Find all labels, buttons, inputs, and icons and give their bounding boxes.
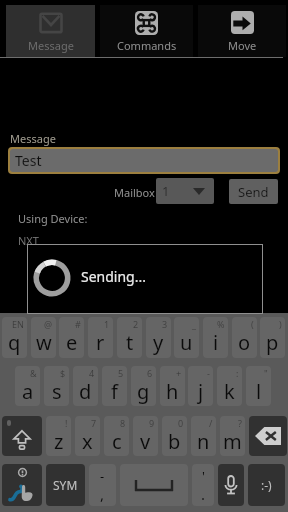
- staticText: c: [112, 428, 122, 455]
- button[interactable]: 8: [104, 416, 129, 456]
- staticText: u: [180, 329, 193, 356]
- staticText: p: [266, 329, 279, 356]
- button[interactable]: 1: [156, 178, 214, 204]
- button[interactable]: 4: [73, 366, 98, 406]
- staticText: l: [256, 378, 262, 405]
- staticText: -: [207, 367, 210, 379]
- button[interactable]: Commands: [100, 5, 193, 57]
- staticText: j: [198, 378, 204, 405]
- button[interactable]: :-): [248, 464, 285, 506]
- staticText: !: [65, 417, 68, 429]
- staticText: ): [279, 318, 282, 330]
- staticText: :: [236, 367, 239, 379]
- button[interactable]: _: [174, 317, 199, 358]
- staticText: 1: [162, 182, 170, 200]
- staticText: ?: [238, 417, 242, 429]
- staticText: g: [137, 378, 150, 405]
- staticText: %: [217, 318, 225, 330]
- button[interactable]: 1: [88, 317, 113, 358]
- staticText: n: [197, 428, 210, 455]
- button[interactable]: 3: [146, 317, 171, 358]
- staticText: m: [223, 428, 242, 455]
- button[interactable]: Message: [6, 5, 95, 57]
- button[interactable]: ': [192, 464, 214, 506]
- button[interactable]: +: [160, 366, 185, 406]
- button[interactable]: -: [188, 366, 213, 406]
- staticText: 0: [178, 417, 184, 429]
- staticText: Commands: [117, 38, 177, 53]
- staticText: d: [79, 378, 92, 405]
- staticText: 8: [120, 417, 126, 429]
- button[interactable]: (: [232, 317, 257, 358]
- button[interactable]: Test: [10, 149, 278, 172]
- button[interactable]: Move: [198, 5, 286, 57]
- staticText: :-): [261, 477, 272, 493]
- button[interactable]: #: [59, 317, 84, 358]
- button[interactable]: Gesture typing: [2, 464, 42, 506]
- staticText: v: [140, 428, 151, 455]
- button[interactable]: 9: [133, 416, 158, 456]
- staticText: ': [202, 467, 205, 485]
- staticText: NXT: [18, 233, 39, 248]
- staticText: f: [111, 378, 118, 405]
- other: Select mailbox: [193, 188, 205, 195]
- staticText: -: [100, 467, 105, 485]
- button[interactable]: SYM: [46, 464, 85, 506]
- button[interactable]: 5: [102, 366, 127, 406]
- button[interactable]: 2: [117, 317, 142, 358]
- staticText: Test: [15, 151, 42, 170]
- button[interactable]: 0: [162, 416, 187, 456]
- staticText: z: [54, 428, 64, 455]
- staticText: Send: [238, 183, 269, 201]
- staticText: 6: [147, 367, 153, 379]
- button[interactable]: ?: [220, 416, 245, 456]
- button[interactable]: EN: [2, 317, 27, 358]
- staticText: s: [52, 378, 62, 405]
- button[interactable]: ": [246, 366, 271, 406]
- button[interactable]: Space: [120, 464, 188, 506]
- button[interactable]: !: [46, 416, 71, 456]
- button[interactable]: $: [44, 366, 69, 406]
- staticText: Mailbox: [114, 185, 155, 200]
- staticText: @: [44, 318, 53, 330]
- other: Shift: [2, 416, 42, 456]
- staticText: Message: [28, 38, 74, 53]
- staticText: _: [192, 318, 196, 330]
- staticText: 9: [149, 417, 155, 429]
- staticText: ": [264, 367, 268, 379]
- button[interactable]: Send: [229, 179, 278, 204]
- staticText: Message: [10, 131, 56, 146]
- staticText: q: [8, 329, 21, 356]
- staticText: &: [30, 367, 37, 379]
- staticText: 7: [91, 417, 97, 429]
- staticText: +: [176, 367, 182, 379]
- staticText: SYM: [53, 477, 78, 493]
- staticText: k: [224, 378, 235, 405]
- staticText: a: [22, 378, 34, 405]
- staticText: Using Device:: [18, 211, 88, 226]
- button[interactable]: -: [89, 464, 116, 506]
- button[interactable]: :: [217, 366, 242, 406]
- button[interactable]: Shift: [2, 416, 42, 456]
- button[interactable]: &: [15, 366, 40, 406]
- staticText: w: [36, 329, 52, 356]
- staticText: o: [238, 329, 251, 356]
- staticText: h: [166, 378, 179, 405]
- staticText: 2: [133, 318, 139, 330]
- other: Backspace: [255, 427, 281, 445]
- staticText: .: [201, 484, 206, 504]
- other: Gesture typing: [2, 464, 42, 506]
- staticText: t: [126, 329, 134, 356]
- button[interactable]: Voice input: [218, 464, 244, 506]
- staticText: 5: [118, 367, 124, 379]
- button[interactable]: Backspace: [249, 416, 287, 456]
- staticText: Sending...: [81, 267, 146, 286]
- button[interactable]: ): [260, 317, 285, 358]
- staticText: $: [60, 367, 66, 379]
- button[interactable]: /: [191, 416, 216, 456]
- button[interactable]: 7: [75, 416, 100, 456]
- button[interactable]: %: [203, 317, 228, 358]
- button[interactable]: 6: [131, 366, 156, 406]
- button[interactable]: @: [31, 317, 56, 358]
- staticText: 1: [104, 318, 110, 330]
